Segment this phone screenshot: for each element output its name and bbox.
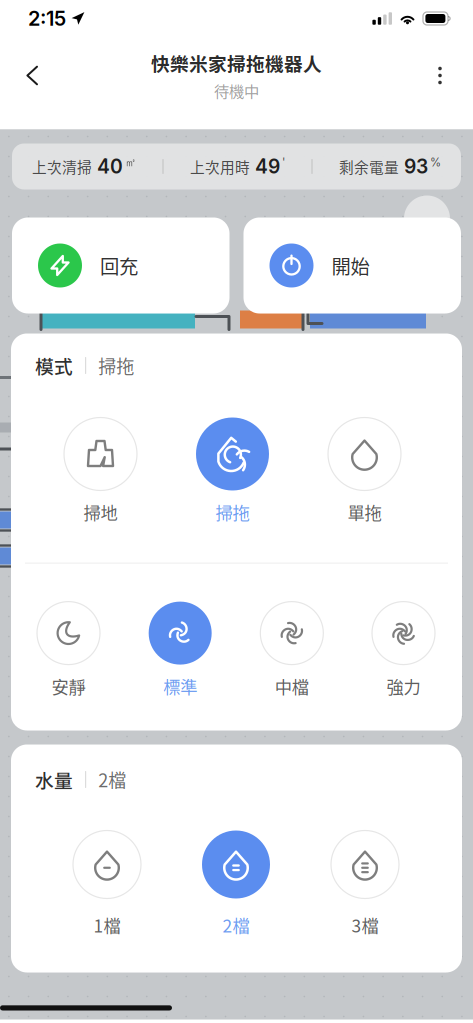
- button[interactable]: 開始: [243, 217, 461, 313]
- staticText: 強力: [386, 674, 420, 699]
- button[interactable]: 掃拖: [196, 417, 269, 525]
- button[interactable]: 3檔: [331, 830, 399, 938]
- staticText: 單拖: [347, 499, 381, 525]
- staticText: ㎡: [125, 155, 136, 170]
- button[interactable]: 單拖: [328, 417, 401, 525]
- staticText: 93: [404, 155, 428, 178]
- staticText: 2:15: [28, 6, 66, 31]
- staticText: 掃地: [83, 499, 117, 525]
- button[interactable]: 標準: [149, 602, 212, 699]
- staticText: 2檔: [222, 912, 249, 938]
- staticText: 2檔: [98, 766, 126, 793]
- staticText: 掃拖: [215, 499, 249, 525]
- staticText: 40: [97, 155, 123, 178]
- staticText: 1檔: [93, 912, 120, 938]
- button[interactable]: 2檔: [202, 830, 270, 938]
- staticText: 3檔: [351, 912, 378, 938]
- staticText: 待機中: [214, 79, 259, 102]
- staticText: 49: [255, 155, 280, 178]
- button[interactable]: 1檔: [73, 830, 141, 938]
- button[interactable]: 掃地: [64, 417, 137, 525]
- staticText: 模式: [35, 352, 73, 379]
- staticText: 掃拖: [98, 352, 134, 379]
- staticText: 安靜: [51, 674, 85, 699]
- staticText: 上次用時: [190, 156, 250, 177]
- button[interactable]: Back: [9, 51, 56, 99]
- button[interactable]: 中檔: [260, 602, 323, 699]
- staticText: 水量: [35, 766, 73, 793]
- staticText: 剩余電量: [339, 156, 399, 177]
- button[interactable]: 安靜: [37, 602, 100, 699]
- staticText: 中檔: [275, 674, 309, 699]
- staticText: %: [430, 156, 441, 169]
- staticText: ': [282, 156, 285, 169]
- button[interactable]: 回充: [12, 217, 229, 313]
- staticText: 快樂米家掃拖機器人: [151, 49, 322, 76]
- staticText: 開始: [331, 251, 369, 279]
- staticText: 標準: [163, 674, 197, 699]
- button[interactable]: 強力: [372, 602, 435, 699]
- staticText: 上次清掃: [32, 156, 92, 177]
- button[interactable]: More options: [416, 52, 464, 98]
- staticText: 回充: [100, 251, 138, 279]
